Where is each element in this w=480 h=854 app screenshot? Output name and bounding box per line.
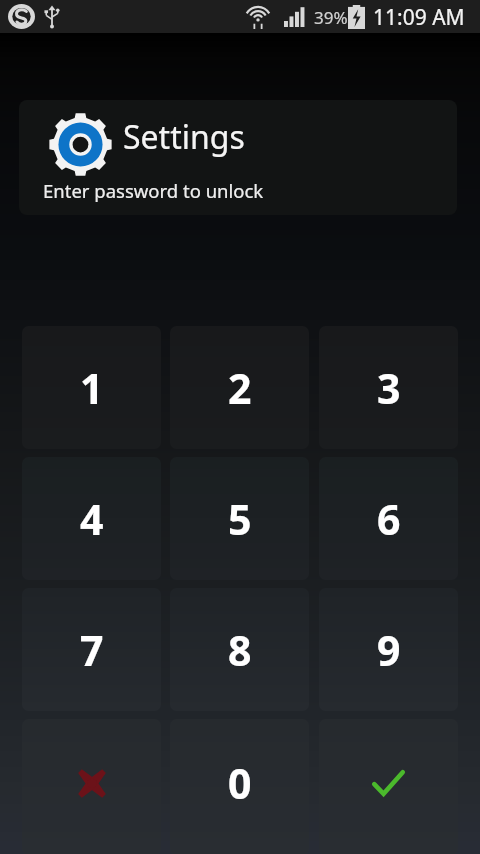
button[interactable]: 7: [22, 588, 161, 711]
staticText: 0: [228, 755, 252, 811]
staticText: 3: [377, 360, 401, 416]
staticText: 5: [228, 491, 252, 547]
staticText: 1: [80, 360, 104, 416]
button[interactable]: Cancel: [22, 719, 161, 854]
button[interactable]: 6: [319, 457, 458, 580]
button[interactable]: 8: [170, 588, 309, 711]
button[interactable]: 2: [170, 326, 309, 449]
button[interactable]: 9: [319, 588, 458, 711]
staticText: Enter password to unlock: [43, 178, 264, 203]
staticText: 2: [228, 360, 252, 416]
staticText: 9: [377, 622, 401, 678]
staticText: Settings: [123, 115, 245, 159]
button[interactable]: 3: [319, 326, 458, 449]
button[interactable]: 5: [170, 457, 309, 580]
button[interactable]: 4: [22, 457, 161, 580]
button[interactable]: 1: [22, 326, 161, 449]
staticText: 7: [80, 622, 104, 678]
staticText: 6: [377, 491, 401, 547]
staticText: 8: [228, 622, 252, 678]
staticText: 4: [80, 491, 104, 547]
button[interactable]: Settings: [19, 100, 457, 215]
button[interactable]: 0: [170, 719, 309, 854]
staticText: 39%: [314, 6, 348, 29]
button[interactable]: Confirm: [319, 719, 458, 854]
staticText: 11:09 AM: [373, 3, 465, 32]
